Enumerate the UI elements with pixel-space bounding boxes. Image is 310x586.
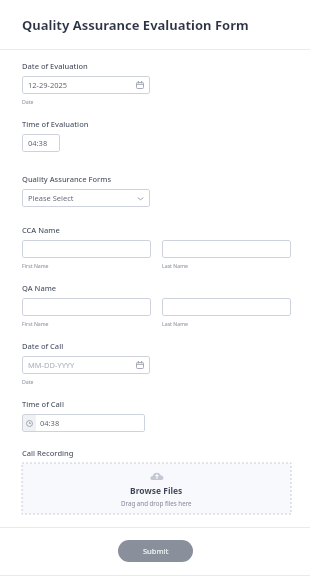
staticText: Drag and drop files here (121, 499, 192, 507)
staticText: Quality Assurance Forms (22, 174, 112, 184)
staticText: MM-DD-YYYY (28, 360, 75, 370)
button[interactable]: MM-DD-YYYY (22, 356, 150, 374)
staticText: Date of Call (22, 341, 64, 351)
staticText: Date (22, 378, 34, 385)
staticText: First Name (22, 262, 49, 269)
staticText: CCA Name (22, 225, 60, 235)
staticText: 12-29-2025 (28, 80, 68, 90)
staticText: 04:38 (40, 418, 60, 428)
staticText: Quality Assurance Evaluation Form (22, 16, 249, 34)
staticText: Please Select (28, 193, 74, 203)
button[interactable] (162, 240, 291, 258)
button[interactable]: Submit (118, 540, 193, 562)
staticText: Browse Files (130, 485, 183, 497)
staticText: First Name (22, 320, 49, 327)
button[interactable]: 04:38 (22, 414, 145, 432)
button[interactable]: 12-29-2025 (22, 76, 150, 94)
button[interactable]: Browse Files (22, 463, 291, 514)
staticText: Date (22, 98, 34, 105)
button[interactable]: Please Select (22, 189, 150, 207)
staticText: Time of Call (22, 399, 64, 409)
button[interactable] (22, 240, 151, 258)
staticText: Call Recording (22, 448, 74, 458)
staticText: Last Name (162, 262, 188, 269)
staticText: QA Name (22, 283, 57, 293)
button[interactable]: 04:38 (22, 134, 60, 152)
staticText: Last Name (162, 320, 188, 327)
staticText: Submit (143, 546, 169, 556)
button[interactable] (162, 298, 291, 316)
staticText: Time of Evaluation (22, 119, 89, 129)
staticText: Date of Evaluation (22, 61, 88, 71)
staticText: 04:38 (28, 138, 48, 148)
button[interactable] (22, 298, 151, 316)
